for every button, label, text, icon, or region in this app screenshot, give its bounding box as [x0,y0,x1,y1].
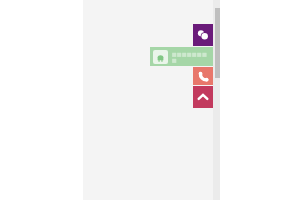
button[interactable]: ■■■■■■■■ [150,47,213,66]
button[interactable]: Chat bubbles [193,24,213,46]
staticText: ■■■■■■■■ [172,51,210,63]
button[interactable]: Call [193,67,213,85]
button[interactable]: Collapse [193,86,213,108]
